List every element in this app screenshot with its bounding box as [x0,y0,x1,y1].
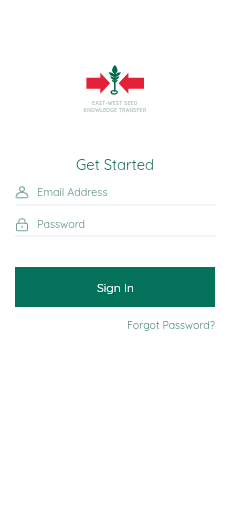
button[interactable]: Sign In [15,267,215,307]
button[interactable]: Email Address [0,180,230,203]
staticText: Email Address [37,185,108,199]
button[interactable]: Forgot Password? [119,312,223,337]
staticText: Forgot Password? [127,318,215,331]
button[interactable]: Password [0,212,230,235]
staticText: Sign In [97,280,134,295]
staticText: Password [37,217,86,231]
staticText: Get Started [0,155,230,174]
staticText: EAST-WEST SEED [0,100,230,106]
other: East-West Seed Knowledge Transfer logo [84,58,148,98]
staticText: KNOWLEDGE TRANSFER [0,107,230,113]
